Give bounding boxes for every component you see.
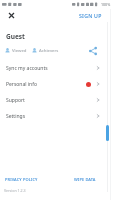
button[interactable]: Support [0, 92, 113, 108]
staticText: 100% [101, 2, 111, 7]
button[interactable]: Viewed [5, 47, 27, 53]
staticText: Version 1.2.3 [4, 188, 26, 193]
staticText: WIPE DATA [74, 177, 96, 182]
staticText: Settings [6, 113, 26, 120]
staticText: Personal info [6, 81, 37, 88]
button[interactable]: Share [86, 44, 99, 57]
button[interactable]: Sync my accounts [0, 60, 113, 76]
staticText: Achievers [39, 47, 59, 53]
staticText: Guest [6, 32, 25, 41]
staticText: Sync my accounts [6, 65, 48, 72]
button[interactable]: WIPE DATA [71, 174, 99, 184]
staticText: PRIVACY POLICY [5, 177, 38, 182]
staticText: Support [6, 97, 25, 104]
button[interactable]: Personal info [0, 76, 113, 92]
button[interactable]: Achievers [32, 47, 59, 53]
button[interactable]: Settings [0, 108, 113, 124]
button[interactable]: Close [4, 8, 18, 22]
button[interactable]: PRIVACY POLICY [2, 174, 41, 184]
staticText: SIGN UP [79, 12, 102, 19]
staticText: Viewed [12, 47, 27, 53]
button[interactable]: SIGN UP [74, 8, 107, 22]
